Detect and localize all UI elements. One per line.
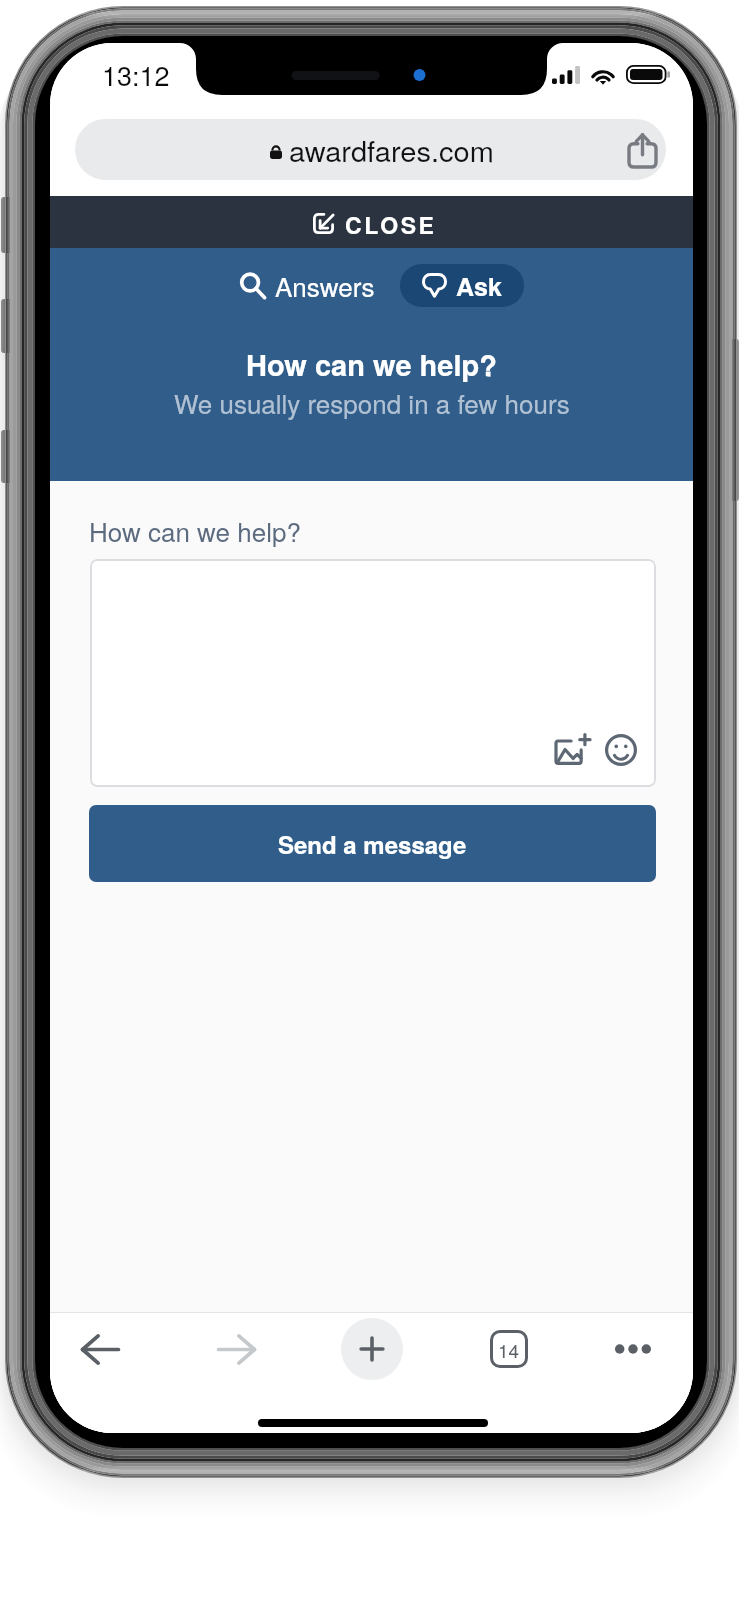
staticText: How can we help? [89,512,301,549]
staticText: Send a message [278,827,467,861]
button[interactable]: CLOSE [50,196,693,248]
staticText: We usually respond in a few hours [174,384,570,421]
staticText: 13:12 [102,55,170,94]
button[interactable]: Emoji [600,729,642,771]
button[interactable]: Ask [400,264,524,307]
button[interactable]: Send a message [89,805,656,882]
button[interactable]: Back [68,1317,132,1381]
button[interactable]: More [601,1317,665,1381]
staticText: CLOSE [345,208,437,241]
staticText: Ask [456,268,502,304]
staticText: awardfares.com [289,129,494,171]
button[interactable]: Share [619,127,665,173]
staticText: How can we help? [246,343,497,385]
staticText: 14 [498,1336,520,1363]
button[interactable]: Answers [225,264,389,307]
staticText: Answers [275,267,375,304]
button[interactable]: Add image [552,729,594,771]
button[interactable]: Add image [90,559,656,787]
button[interactable]: Forward [204,1317,268,1381]
button[interactable]: Tabs [477,1317,541,1381]
button[interactable]: awardfares.com [75,119,666,180]
button[interactable]: New tab [341,1318,403,1380]
